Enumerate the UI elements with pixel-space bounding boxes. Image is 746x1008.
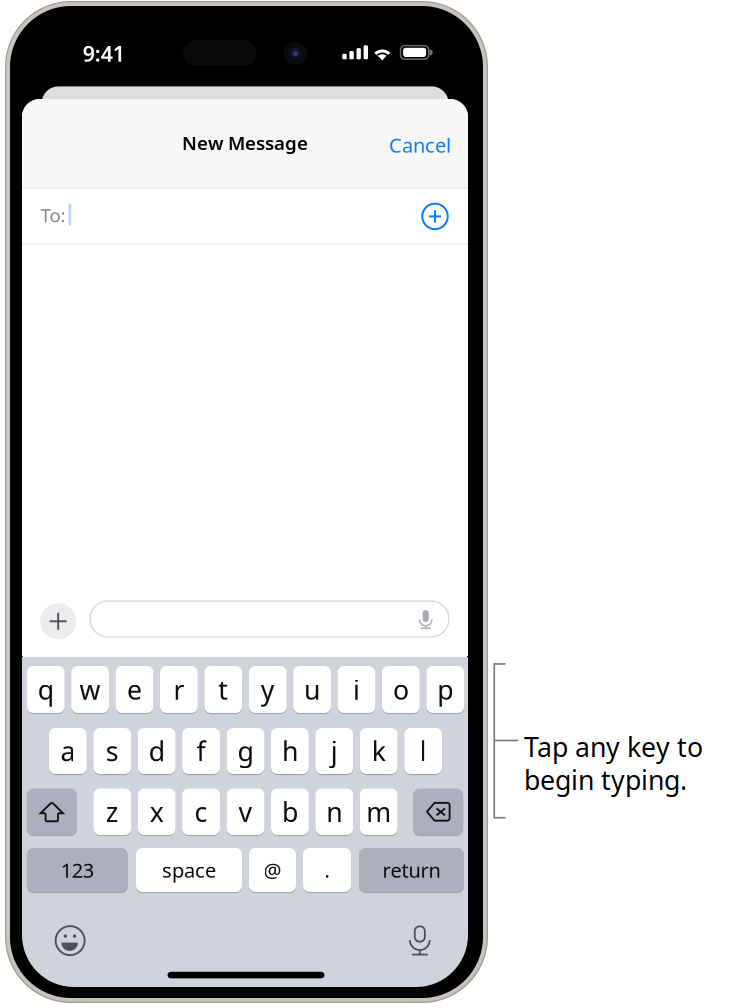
button[interactable]: m bbox=[360, 788, 398, 836]
staticText: Cancel bbox=[389, 132, 451, 158]
button[interactable]: j bbox=[315, 728, 353, 775]
button[interactable]: h bbox=[271, 728, 309, 775]
staticText: n bbox=[326, 794, 342, 829]
staticText: i bbox=[353, 672, 360, 707]
staticText: g bbox=[237, 733, 253, 769]
staticText: Tap any key to bbox=[524, 729, 703, 764]
button[interactable]: Emoji keyboard bbox=[55, 926, 85, 956]
staticText: l bbox=[420, 733, 427, 769]
staticText: z bbox=[106, 794, 119, 829]
staticText: . bbox=[324, 857, 329, 883]
button[interactable]: Numbers bbox=[27, 848, 128, 893]
staticText: To: bbox=[40, 203, 65, 227]
staticText: m bbox=[366, 794, 391, 829]
button[interactable]: space bbox=[136, 848, 242, 893]
staticText: t bbox=[218, 672, 228, 707]
staticText: a bbox=[60, 733, 75, 769]
staticText: u bbox=[304, 672, 320, 707]
button[interactable]: t bbox=[204, 666, 242, 714]
button[interactable]: Cancel bbox=[376, 127, 464, 163]
staticText: return bbox=[382, 857, 440, 883]
button[interactable]: z bbox=[93, 788, 131, 836]
staticText: y bbox=[261, 672, 275, 707]
button[interactable]: l bbox=[404, 728, 442, 775]
button[interactable]: at sign bbox=[249, 848, 296, 893]
button[interactable]: b bbox=[271, 788, 309, 836]
button[interactable]: a bbox=[49, 728, 87, 775]
staticText: 9:41 bbox=[83, 39, 125, 68]
button[interactable]: Delete bbox=[413, 788, 463, 836]
button[interactable]: Shift bbox=[27, 788, 77, 836]
staticText: x bbox=[150, 794, 164, 829]
staticText: d bbox=[149, 733, 165, 769]
staticText: r bbox=[173, 672, 184, 707]
staticText: j bbox=[331, 733, 338, 769]
button[interactable]: Attach media bbox=[40, 603, 76, 639]
staticText: e bbox=[127, 672, 142, 707]
staticText: @ bbox=[263, 857, 281, 883]
staticText: k bbox=[372, 733, 386, 769]
button[interactable]: Dictate bbox=[409, 924, 431, 955]
button[interactable]: i bbox=[338, 666, 375, 714]
button[interactable]: s bbox=[93, 728, 131, 775]
button[interactable]: g bbox=[227, 728, 264, 775]
staticText: b bbox=[282, 794, 298, 829]
button[interactable]: d bbox=[138, 728, 176, 775]
button[interactable]: e bbox=[116, 666, 153, 714]
button[interactable]: r bbox=[160, 666, 198, 714]
staticText: o bbox=[393, 672, 409, 707]
button[interactable]: n bbox=[315, 788, 353, 836]
button[interactable]: v bbox=[227, 788, 264, 836]
staticText: v bbox=[238, 794, 252, 829]
button[interactable]: u bbox=[293, 666, 331, 714]
staticText: New Message bbox=[182, 130, 308, 155]
button[interactable]: period bbox=[303, 848, 351, 893]
staticText: s bbox=[106, 733, 119, 769]
staticText: w bbox=[80, 672, 101, 707]
staticText: space bbox=[162, 857, 216, 883]
staticText: p bbox=[437, 672, 453, 707]
button[interactable]: q bbox=[27, 666, 65, 714]
staticText: f bbox=[197, 733, 206, 769]
staticText: q bbox=[38, 672, 54, 707]
button[interactable]: o bbox=[382, 666, 420, 714]
staticText: c bbox=[195, 794, 208, 829]
button[interactable]: y bbox=[249, 666, 287, 714]
staticText: begin typing. bbox=[524, 762, 687, 797]
button[interactable]: return bbox=[359, 848, 464, 893]
button[interactable]: f bbox=[182, 728, 220, 775]
button[interactable]: x bbox=[138, 788, 176, 836]
button[interactable]: Add recipient bbox=[421, 202, 449, 230]
button[interactable]: k bbox=[360, 728, 398, 775]
staticText: h bbox=[282, 733, 298, 769]
button[interactable]: w bbox=[71, 666, 109, 714]
button[interactable]: c bbox=[182, 788, 220, 836]
staticText: 123 bbox=[61, 857, 94, 883]
button[interactable]: p bbox=[426, 666, 464, 714]
